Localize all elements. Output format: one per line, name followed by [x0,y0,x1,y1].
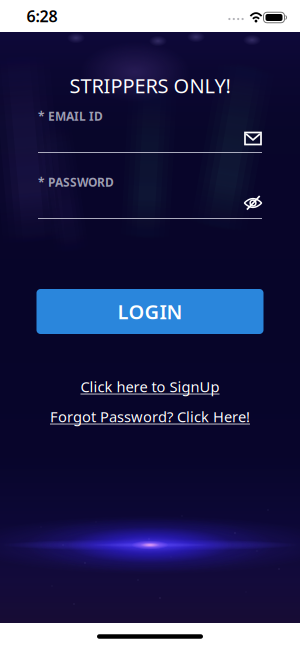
staticText: 6:28 [26,5,57,27]
button[interactable]: Click here to SignUp [80,377,219,396]
staticText: LOGIN [117,298,182,325]
button[interactable]: Email ID [38,118,262,152]
button[interactable]: Forgot Password? Click Here! [50,407,250,426]
staticText: Forgot Password? Click Here! [50,407,250,426]
staticText: Click here to SignUp [80,377,219,396]
staticText: * PASSWORD [38,174,114,190]
button[interactable]: Password [38,184,262,218]
staticText: STRIPPERS ONLY! [69,72,230,99]
button[interactable]: LOGIN [36,289,263,334]
button[interactable]: Show password [243,195,262,211]
staticText: * EMAIL ID [38,108,103,124]
